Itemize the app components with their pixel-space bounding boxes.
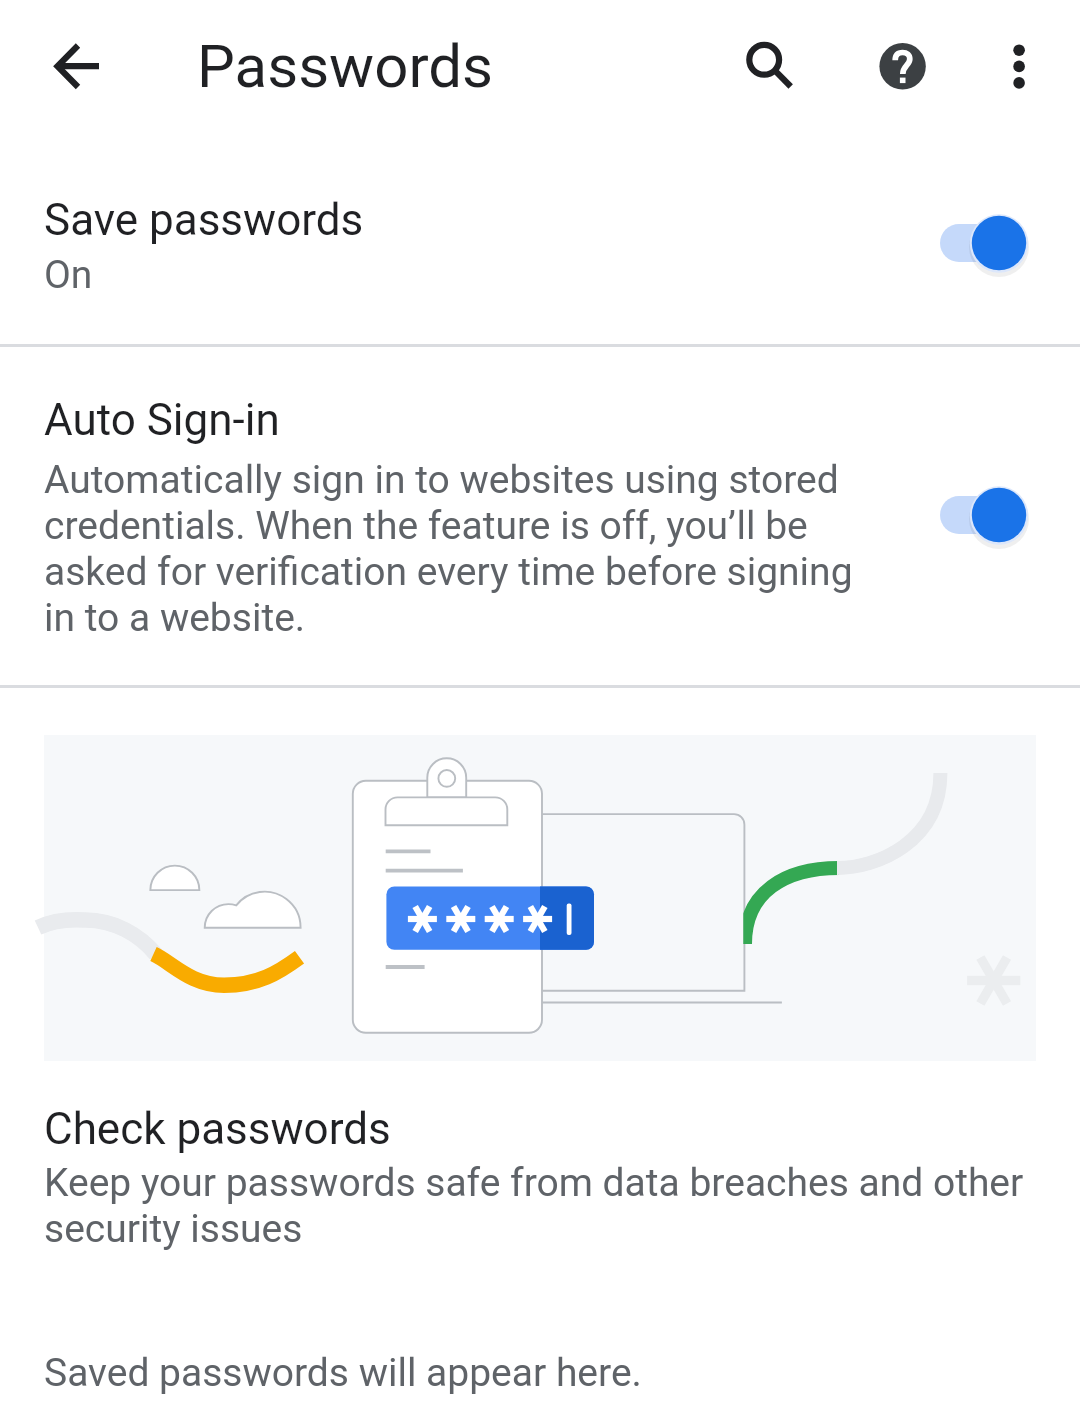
staticText: Save passwords — [44, 194, 364, 246]
button[interactable] — [0, 155, 1080, 344]
staticText: On — [44, 252, 93, 298]
button[interactable]: Toggle — [930, 203, 1040, 283]
staticText: Keep your passwords safe from data breac… — [44, 1160, 1034, 1252]
staticText: Check passwords — [44, 1103, 391, 1155]
staticText: Saved passwords will appear here. — [44, 1350, 642, 1396]
button[interactable]: Toggle — [930, 475, 1040, 555]
button[interactable]: More options — [987, 34, 1051, 98]
button[interactable]: Back — [45, 34, 109, 98]
staticText: Passwords — [197, 31, 493, 101]
button[interactable] — [0, 1075, 1080, 1265]
staticText: Automatically sign in to websites using … — [44, 457, 870, 641]
staticText: Auto Sign-in — [44, 394, 280, 446]
button[interactable]: Search — [712, 8, 816, 112]
button[interactable] — [0, 347, 1080, 685]
button[interactable]: Help — [870, 34, 934, 98]
